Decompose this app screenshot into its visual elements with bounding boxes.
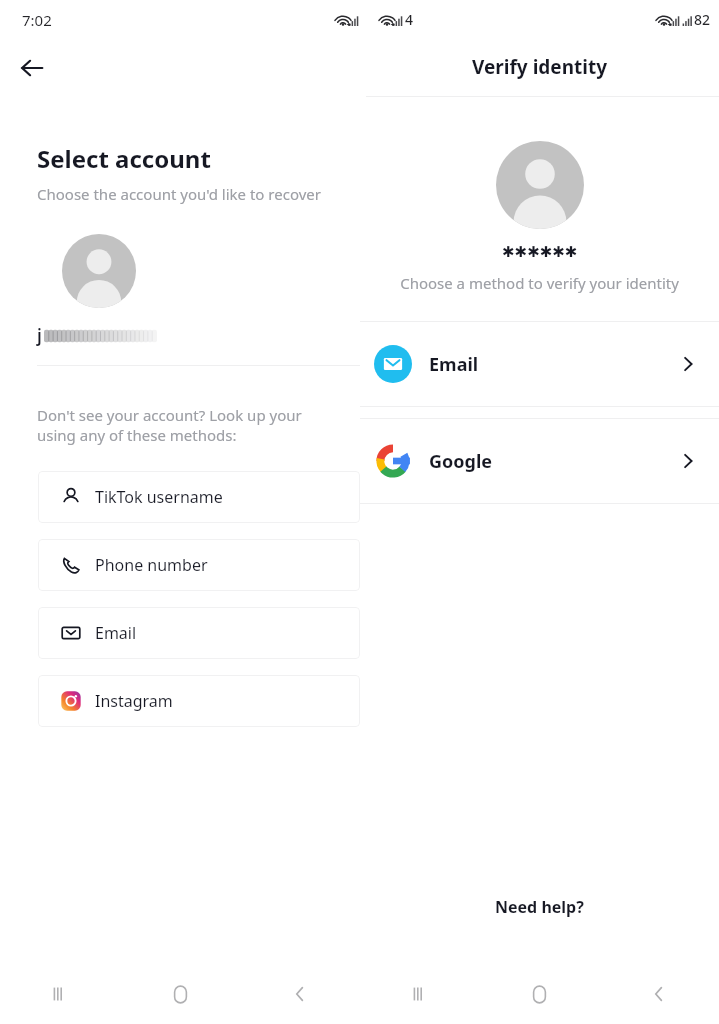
staticText: Email [429, 352, 479, 377]
staticText: using any of these methods: [37, 425, 237, 445]
staticText: ✱✱✱✱✱✱ [502, 243, 578, 260]
button[interactable]: Back [12, 48, 52, 88]
staticText: Phone number [95, 554, 208, 576]
staticText: 7:02 [22, 10, 52, 30]
staticText: Google [429, 449, 493, 474]
staticText: 82 [694, 10, 711, 29]
staticText: Email [95, 622, 137, 644]
staticText: Choose a method to verify your identity [400, 273, 679, 293]
button[interactable]: Google [360, 419, 719, 503]
button[interactable]: Back [599, 964, 719, 1024]
button[interactable]: Back [240, 964, 360, 1024]
button[interactable]: Email [38, 607, 360, 659]
staticText: j [37, 324, 42, 347]
button[interactable]: Recent apps [360, 964, 479, 1024]
staticText: TikTok username [95, 486, 223, 508]
button[interactable]: Home [120, 964, 240, 1024]
staticText: Don't see your account? Look up your acc… [37, 405, 360, 425]
staticText: 4 [405, 10, 414, 29]
staticText: Choose the account you'd like to recover [37, 184, 321, 204]
staticText: Need help? [495, 896, 584, 918]
button[interactable]: Phone number [38, 539, 360, 591]
button[interactable]: Instagram [38, 675, 360, 727]
button[interactable]: Need help? [360, 888, 719, 926]
staticText: Select account [37, 142, 211, 175]
staticText: Instagram [95, 690, 173, 712]
button[interactable]: Recent apps [0, 964, 120, 1024]
button[interactable]: Email [360, 322, 719, 406]
button[interactable]: Home [479, 964, 599, 1024]
button[interactable]: j [62, 234, 181, 347]
button[interactable]: TikTok username [38, 471, 360, 523]
staticText: Verify identity [472, 54, 608, 80]
